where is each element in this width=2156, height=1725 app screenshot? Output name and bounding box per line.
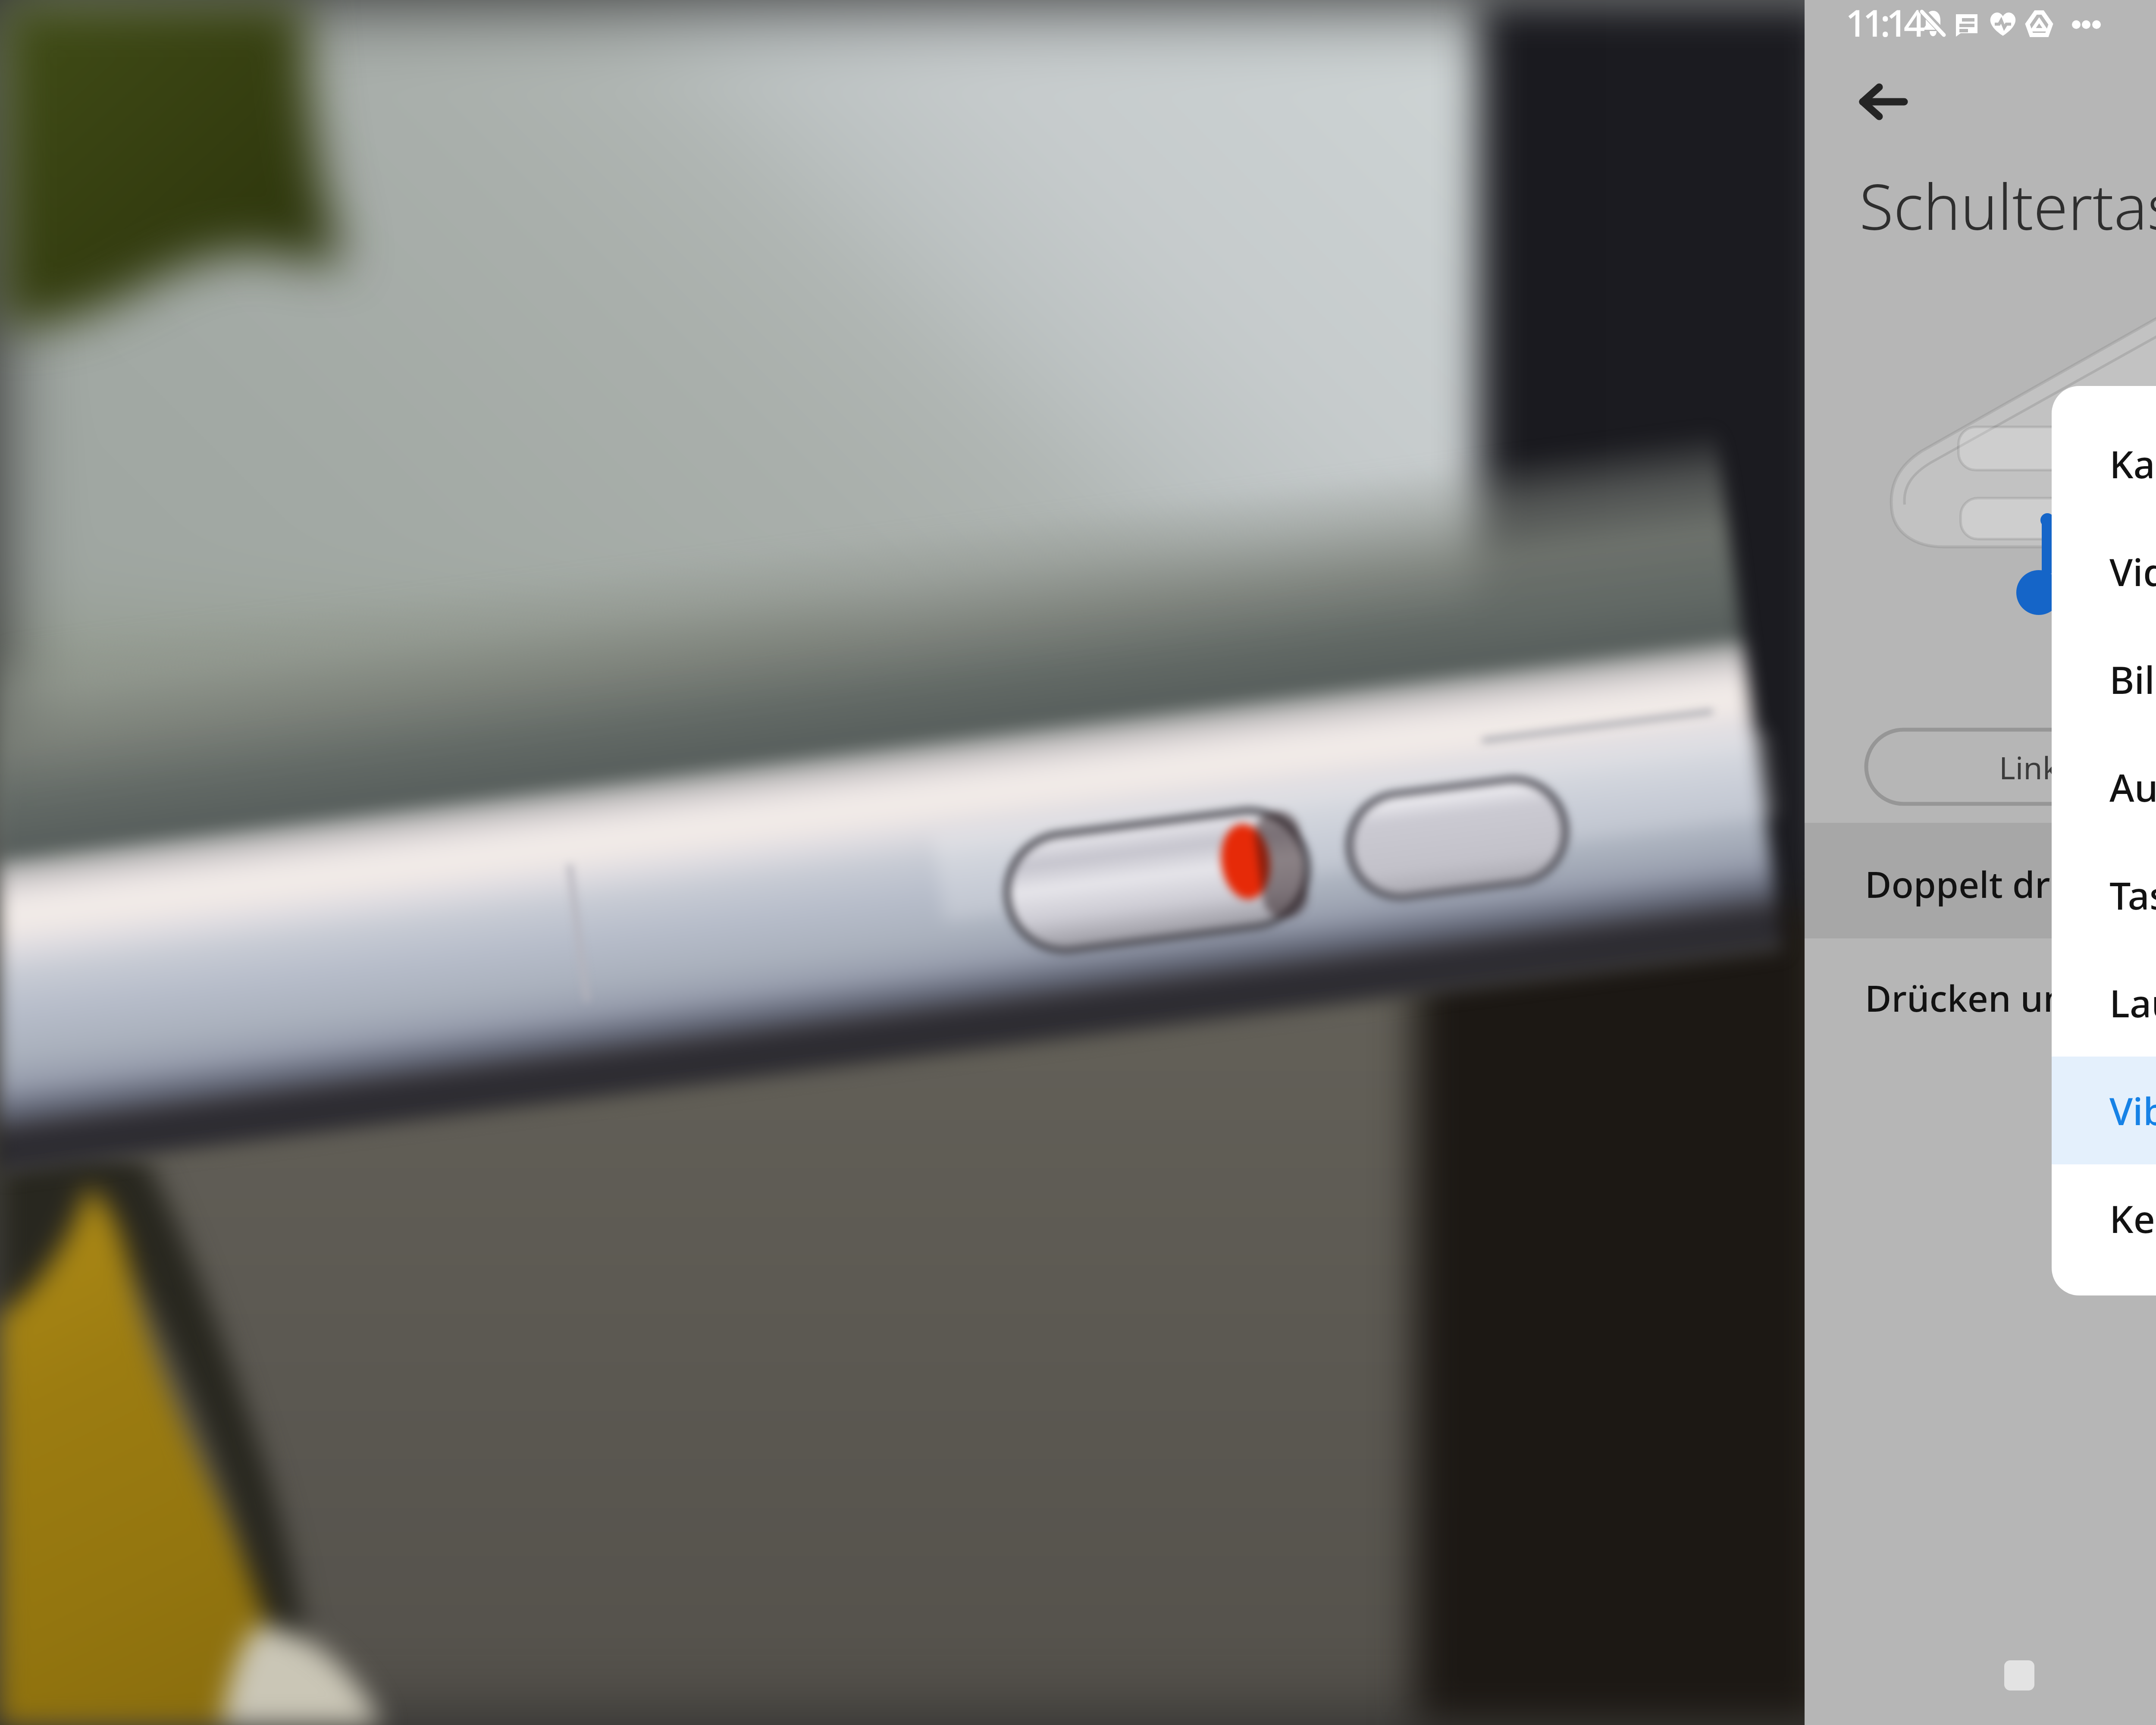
button[interactable]: Lautlos-Modus <box>2052 949 2156 1057</box>
staticText: Kamera <box>2109 438 2156 489</box>
staticText: Keine <box>2109 1192 2156 1244</box>
button[interactable]: Keine <box>2052 1164 2156 1272</box>
staticText: Video aufnehmen <box>2109 546 2156 597</box>
staticText: Drücken und halten <box>1865 973 2156 1022</box>
staticText: Doppelt drücken <box>1865 859 2155 908</box>
staticText: Bildschirm aufnehmen <box>2109 653 2156 705</box>
staticText: 11:14 <box>1846 0 1921 47</box>
button[interactable]: Taschenlampe <box>2052 841 2156 949</box>
staticText: Taschenlampe <box>2109 869 2156 921</box>
button[interactable]: Kamera <box>2052 410 2156 517</box>
staticText: Link <box>1999 746 2059 788</box>
button[interactable]: Bildschirm aufnehmen <box>2052 625 2156 733</box>
staticText: Lautlos-Modus <box>2109 977 2156 1029</box>
button[interactable]: Audio aufnehmen <box>2052 733 2156 841</box>
other: Navigation bar <box>1805 0 2156 1725</box>
button[interactable]: Video aufnehmen <box>2052 517 2156 625</box>
staticText: Audio aufnehmen <box>2109 761 2156 813</box>
staticText: Vibrieren <box>2109 1085 2156 1136</box>
staticText: Schultertasten <box>1859 163 2156 248</box>
button[interactable]: Vibrieren <box>2052 1057 2156 1164</box>
